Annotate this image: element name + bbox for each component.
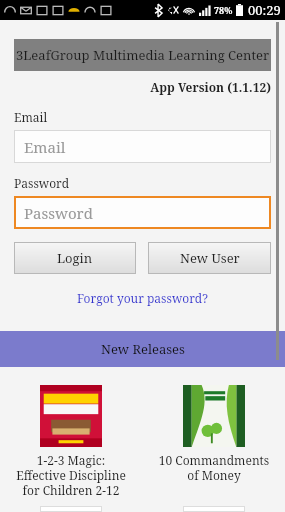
button[interactable]: Email — [14, 130, 271, 163]
staticText: 3LeafGroup Multimedia Learning Center — [16, 46, 270, 64]
button[interactable]: 3LeafGroup Multimedia Learning Center — [14, 39, 271, 71]
staticText: 1-2-3 Magic: Effective Discipline for Ch… — [11, 452, 131, 498]
button[interactable]: 1-2-3 Magic: Effective Discipline for Ch… — [11, 385, 131, 498]
staticText: 78% — [214, 4, 233, 16]
staticText: Login — [57, 249, 93, 267]
staticText: Password — [24, 203, 93, 223]
staticText: Password — [14, 175, 70, 191]
button[interactable]: Password — [14, 196, 271, 229]
staticText: Email — [24, 137, 66, 157]
staticText: App Version (1.1.12) — [14, 79, 271, 95]
button[interactable]: 10 Commandments of Money — [154, 385, 274, 483]
staticText: New User — [180, 249, 240, 267]
staticText: 10 Commandments of Money — [154, 452, 274, 483]
button[interactable]: New Releases — [0, 331, 285, 367]
button[interactable] — [40, 506, 102, 512]
staticText: Forgot your password? — [77, 290, 208, 306]
button[interactable]: Forgot your password? — [14, 290, 271, 306]
staticText: Email — [14, 109, 48, 125]
button[interactable]: Login — [14, 242, 136, 274]
staticText: New Releases — [101, 340, 185, 358]
button[interactable] — [183, 506, 245, 512]
button[interactable]: New User — [148, 242, 271, 274]
staticText: 00:29 — [248, 1, 281, 19]
